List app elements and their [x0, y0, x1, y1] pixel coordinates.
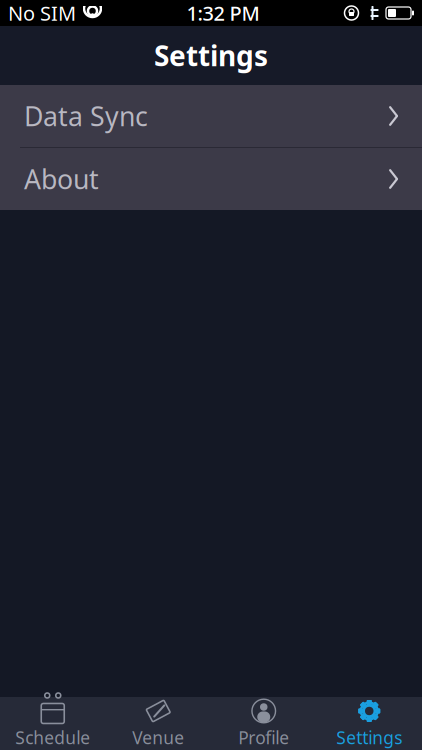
- staticText: Settings: [336, 726, 402, 749]
- button[interactable]: Settings: [316, 697, 422, 750]
- button[interactable]: Schedule: [0, 697, 105, 750]
- staticText: 1:32 PM: [186, 0, 259, 26]
- button[interactable]: Profile: [211, 697, 316, 750]
- staticText: Profile: [238, 726, 289, 749]
- staticText: Schedule: [15, 726, 90, 749]
- staticText: Venue: [132, 726, 184, 749]
- staticText: No SIM: [8, 0, 76, 26]
- staticText: Data Sync: [24, 98, 148, 134]
- staticText: About: [24, 161, 99, 197]
- staticText: Settings: [154, 37, 268, 74]
- button[interactable]: Venue: [105, 697, 211, 750]
- button[interactable]: About: [0, 148, 422, 210]
- button[interactable]: Data Sync: [0, 85, 422, 147]
